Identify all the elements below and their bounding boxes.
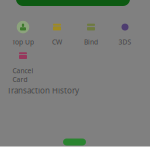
button[interactable]: 3DS — [108, 22, 142, 45]
staticText: Cancel Card — [12, 66, 33, 84]
staticText: Top Up — [12, 38, 34, 46]
button[interactable]: Top Up — [6, 22, 40, 45]
staticText: CW — [52, 38, 62, 46]
staticText: Bind — [84, 38, 98, 46]
button[interactable]: Bind — [74, 22, 108, 45]
staticText: Transaction History — [7, 85, 79, 96]
button[interactable]: Cancel Card — [6, 55, 40, 78]
staticText: 3DS — [118, 38, 131, 46]
button[interactable]: CW — [40, 22, 74, 45]
